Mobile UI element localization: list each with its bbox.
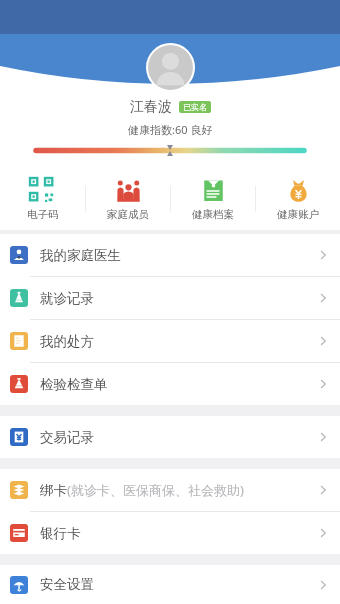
staticText: 已实名 [183, 102, 207, 112]
staticText: 我的家庭医生 [40, 247, 121, 264]
button[interactable]: 安全设置 [0, 565, 340, 604]
staticText: 安全设置 [40, 576, 94, 593]
button[interactable]: 银行卡 [0, 512, 340, 554]
staticText: 就诊记录 [40, 290, 94, 307]
staticText: 绑卡 [40, 482, 67, 499]
button[interactable]: 我的处方 [0, 320, 340, 362]
button[interactable]: 我的家庭医生 [0, 234, 340, 276]
button[interactable]: 绑卡 [0, 469, 340, 511]
button[interactable]: 健康档案 [171, 168, 255, 230]
staticText: 家庭成员 [107, 208, 149, 221]
button[interactable]: 交易记录 [0, 416, 340, 458]
button[interactable]: 家庭成员 [86, 168, 170, 230]
staticText: (就诊卡、医保商保、社会救助) [67, 481, 244, 499]
button[interactable]: 电子码 [0, 168, 85, 230]
staticText: 我的处方 [40, 333, 94, 350]
button[interactable]: 就诊记录 [0, 277, 340, 319]
staticText: 健康账户 [277, 208, 319, 221]
staticText: 健康指数:60 良好 [128, 122, 213, 137]
staticText: 检验检查单 [40, 376, 108, 393]
staticText: 交易记录 [40, 429, 94, 446]
button[interactable]: 检验检查单 [0, 363, 340, 405]
staticText: 健康档案 [192, 208, 234, 221]
staticText: 电子码 [27, 208, 59, 221]
other: Profile photo [148, 45, 193, 90]
button[interactable]: 健康账户 [256, 168, 340, 230]
staticText: 江春波 [130, 98, 172, 116]
staticText: 银行卡 [40, 525, 81, 542]
